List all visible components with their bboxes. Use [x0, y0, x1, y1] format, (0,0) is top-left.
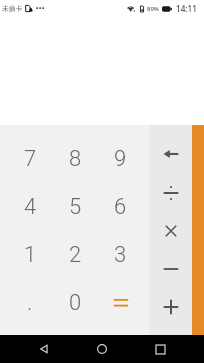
staticText: 6: [114, 194, 127, 220]
button[interactable]: Multiply: [150, 212, 192, 250]
button[interactable]: Backspace: [150, 135, 192, 174]
staticText: 14:11: [176, 3, 197, 14]
button[interactable]: 5: [53, 183, 98, 231]
button[interactable]: 1: [7, 231, 53, 279]
button[interactable]: Add: [150, 288, 192, 326]
staticText: 7: [24, 146, 37, 172]
button[interactable]: Divide: [150, 174, 192, 212]
button[interactable]: 0: [53, 279, 98, 327]
button[interactable]: 4: [7, 183, 53, 231]
button[interactable]: Back: [30, 335, 58, 363]
button[interactable]: 8: [53, 135, 98, 183]
staticText: 4: [24, 194, 37, 220]
staticText: 89%: [147, 5, 159, 13]
staticText: 9: [114, 146, 127, 172]
button[interactable]: 7: [7, 135, 53, 183]
button[interactable]: Subtract: [150, 250, 192, 288]
staticText: 3: [114, 242, 127, 268]
button[interactable]: Equals: [98, 279, 143, 327]
staticText: 未插卡: [2, 4, 23, 13]
button[interactable]: 2: [53, 231, 98, 279]
button[interactable]: 6: [98, 183, 143, 231]
button[interactable]: Recents: [146, 335, 174, 363]
staticText: 8: [69, 146, 82, 172]
staticText: 0: [69, 290, 82, 316]
button[interactable]: 9: [98, 135, 143, 183]
button[interactable]: Home: [88, 335, 116, 363]
staticText: 5: [69, 194, 82, 220]
button[interactable]: .: [7, 279, 53, 327]
button[interactable]: 3: [98, 231, 143, 279]
staticText: 1: [24, 242, 37, 268]
staticText: 2: [69, 242, 82, 268]
staticText: .: [27, 290, 33, 316]
